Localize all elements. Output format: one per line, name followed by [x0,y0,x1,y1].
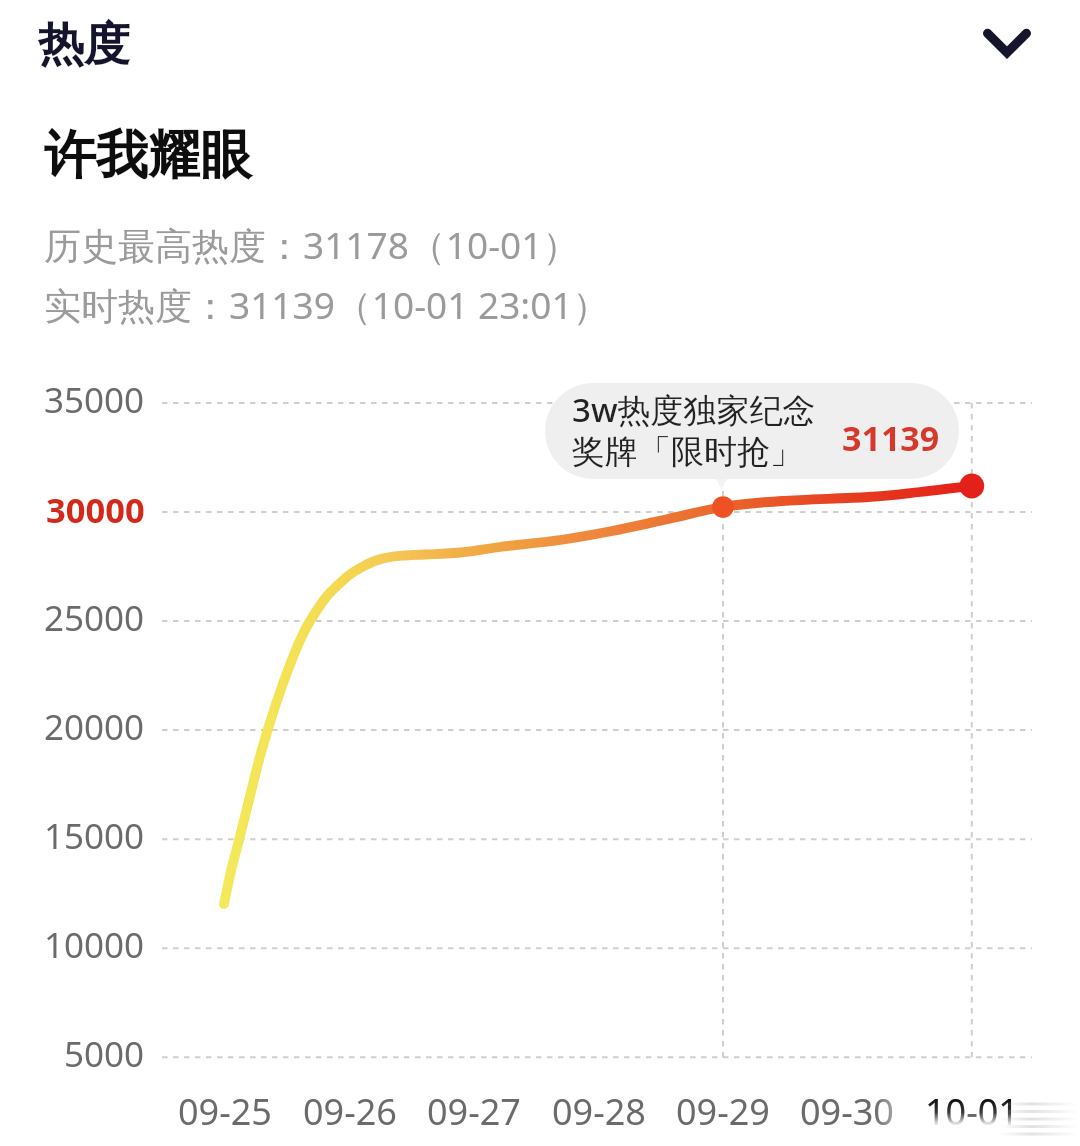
staticText: 历史最高热度：31178（10-01） [44,219,580,270]
staticText: 09-27 [427,1087,521,1133]
staticText: 31139 [842,415,940,461]
staticText: 35000 [44,376,145,424]
staticText: 09-28 [552,1087,646,1133]
staticText: 10-01 [925,1087,1019,1133]
staticText: 09-25 [178,1087,272,1133]
staticText: 热度 [38,16,130,74]
staticText: 实时热度：31139（10-01 23:01） [44,279,610,330]
staticText: 15000 [44,812,145,860]
staticText: 奖牌「限时抢」 [572,431,803,473]
staticText: 20000 [44,703,145,751]
button[interactable]: 3w热度独家纪念 [545,383,959,479]
staticText: 5000 [64,1030,145,1078]
staticText: 30000 [46,486,145,533]
staticText: 3w热度独家纪念 [572,387,816,432]
staticText: 09-29 [676,1087,770,1133]
button[interactable]: Collapse [968,4,1046,82]
button[interactable]: 许我耀眼 [44,123,252,189]
staticText: 09-26 [303,1087,397,1133]
staticText: 10000 [44,921,145,969]
staticText: 09-30 [800,1087,894,1133]
staticText: 25000 [44,594,145,642]
